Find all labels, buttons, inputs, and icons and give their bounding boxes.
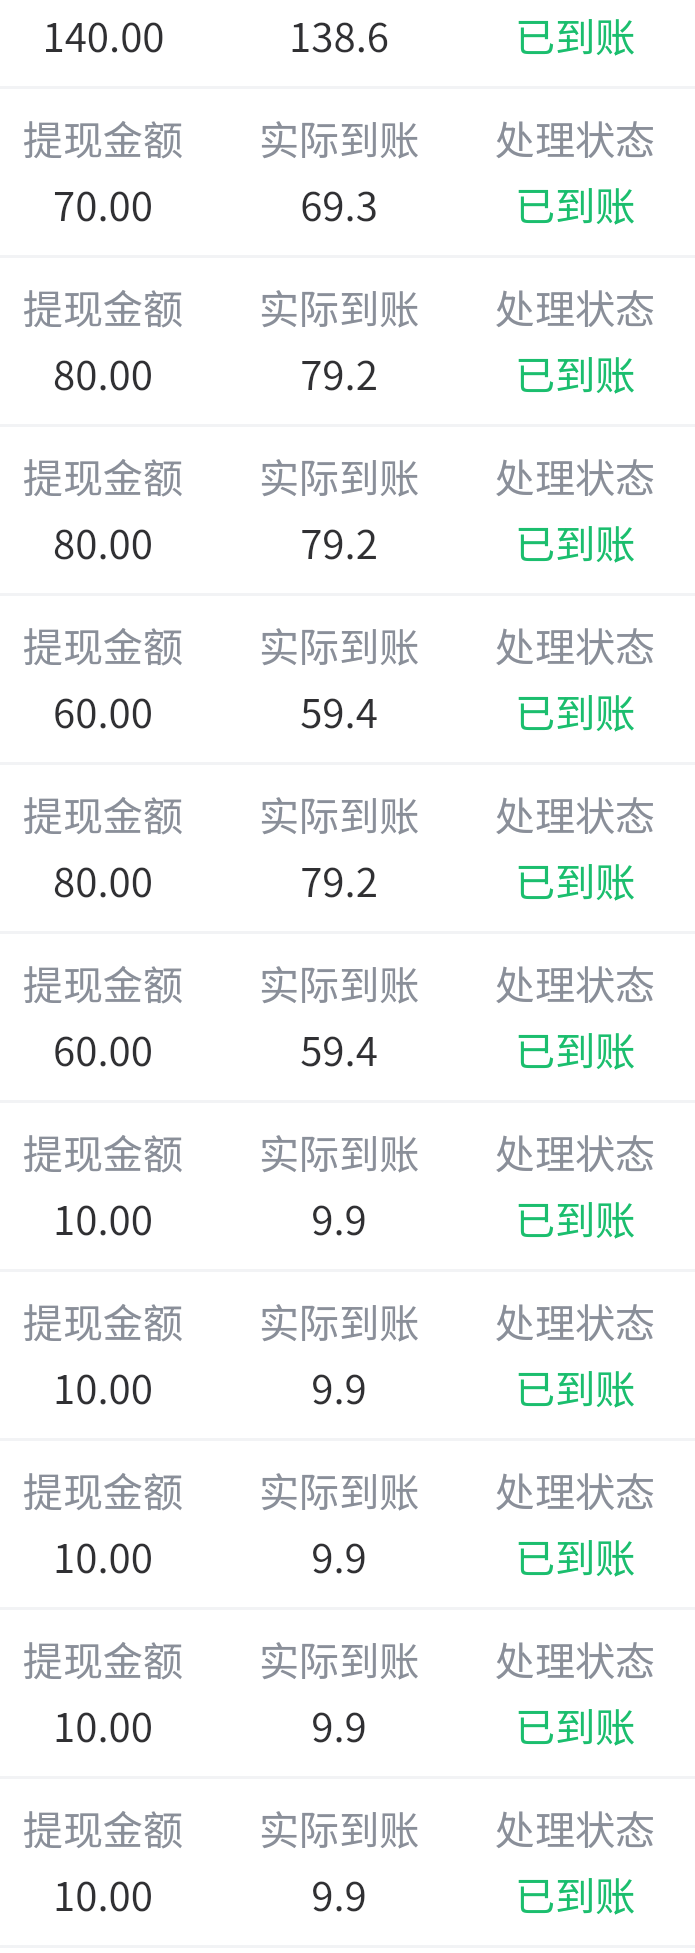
staticText: 已到账 xyxy=(515,1358,635,1416)
staticText: 处理状态 xyxy=(495,1630,655,1688)
staticText: 处理状态 xyxy=(495,278,655,336)
staticText: 140.00 xyxy=(42,6,165,64)
button[interactable]: 提现金额 xyxy=(0,1610,695,1779)
staticText: 59.4 xyxy=(300,1020,378,1078)
staticText: 80.00 xyxy=(53,851,153,909)
staticText: 处理状态 xyxy=(495,785,655,843)
staticText: 已到账 xyxy=(515,513,635,571)
staticText: 实际到账 xyxy=(259,616,419,674)
staticText: 处理状态 xyxy=(495,1292,655,1350)
staticText: 79.2 xyxy=(300,513,378,571)
staticText: 实际到账 xyxy=(259,1123,419,1181)
staticText: 已到账 xyxy=(515,6,635,64)
staticText: 提现金额 xyxy=(23,1461,183,1519)
staticText: 实际到账 xyxy=(259,447,419,505)
staticText: 已到账 xyxy=(515,851,635,909)
staticText: 10.00 xyxy=(53,1189,153,1247)
staticText: 59.4 xyxy=(300,682,378,740)
staticText: 60.00 xyxy=(53,1020,153,1078)
staticText: 9.9 xyxy=(311,1865,367,1923)
staticText: 10.00 xyxy=(53,1527,153,1585)
staticText: 提现金额 xyxy=(23,616,183,674)
staticText: 提现金额 xyxy=(23,1630,183,1688)
button[interactable]: 提现金额 xyxy=(0,1441,695,1610)
staticText: 79.2 xyxy=(300,851,378,909)
staticText: 已到账 xyxy=(515,1189,635,1247)
staticText: 10.00 xyxy=(53,1865,153,1923)
staticText: 提现金额 xyxy=(23,785,183,843)
staticText: 实际到账 xyxy=(259,1799,419,1857)
staticText: 已到账 xyxy=(515,1696,635,1754)
staticText: 提现金额 xyxy=(23,1123,183,1181)
staticText: 已到账 xyxy=(515,1020,635,1078)
staticText: 处理状态 xyxy=(495,109,655,167)
staticText: 实际到账 xyxy=(259,109,419,167)
button[interactable]: 提现金额 xyxy=(0,765,695,934)
button[interactable]: 提现金额 xyxy=(0,89,695,258)
staticText: 已到账 xyxy=(515,344,635,402)
staticText: 10.00 xyxy=(53,1358,153,1416)
staticText: 已到账 xyxy=(515,175,635,233)
staticText: 138.6 xyxy=(289,6,389,64)
staticText: 9.9 xyxy=(311,1189,367,1247)
button[interactable]: 提现金额 xyxy=(0,0,695,89)
button[interactable]: 提现金额 xyxy=(0,1103,695,1272)
staticText: 提现金额 xyxy=(23,447,183,505)
staticText: 70.00 xyxy=(53,175,153,233)
staticText: 实际到账 xyxy=(259,785,419,843)
staticText: 实际到账 xyxy=(259,278,419,336)
staticText: 处理状态 xyxy=(495,447,655,505)
staticText: 已到账 xyxy=(515,1865,635,1923)
staticText: 处理状态 xyxy=(495,1123,655,1181)
staticText: 79.2 xyxy=(300,344,378,402)
button[interactable]: 提现金额 xyxy=(0,258,695,427)
staticText: 60.00 xyxy=(53,682,153,740)
staticText: 80.00 xyxy=(53,344,153,402)
button[interactable]: 提现金额 xyxy=(0,934,695,1103)
staticText: 9.9 xyxy=(311,1358,367,1416)
staticText: 9.9 xyxy=(311,1696,367,1754)
staticText: 9.9 xyxy=(311,1527,367,1585)
staticText: 处理状态 xyxy=(495,954,655,1012)
staticText: 提现金额 xyxy=(23,109,183,167)
button[interactable]: 提现金额 xyxy=(0,596,695,765)
button[interactable]: 提现金额 xyxy=(0,1272,695,1441)
staticText: 已到账 xyxy=(515,682,635,740)
staticText: 实际到账 xyxy=(259,954,419,1012)
staticText: 提现金额 xyxy=(23,1292,183,1350)
staticText: 已到账 xyxy=(515,1527,635,1585)
staticText: 80.00 xyxy=(53,513,153,571)
button[interactable]: 提现金额 xyxy=(0,427,695,596)
staticText: 69.3 xyxy=(300,175,378,233)
staticText: 处理状态 xyxy=(495,1799,655,1857)
staticText: 提现金额 xyxy=(23,278,183,336)
staticText: 实际到账 xyxy=(259,1461,419,1519)
staticText: 提现金额 xyxy=(23,1799,183,1857)
staticText: 10.00 xyxy=(53,1696,153,1754)
staticText: 实际到账 xyxy=(259,1292,419,1350)
staticText: 实际到账 xyxy=(259,1630,419,1688)
button[interactable]: 提现金额 xyxy=(0,1779,695,1948)
staticText: 处理状态 xyxy=(495,616,655,674)
staticText: 提现金额 xyxy=(23,954,183,1012)
staticText: 处理状态 xyxy=(495,1461,655,1519)
